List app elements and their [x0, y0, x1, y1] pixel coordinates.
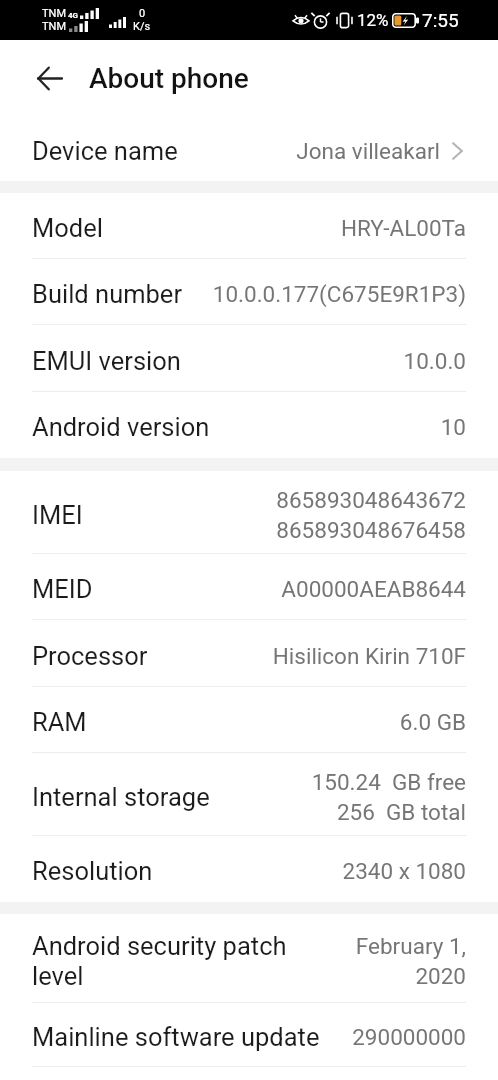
staticText: 4G	[68, 11, 79, 20]
button[interactable]: Device name	[0, 116, 498, 181]
staticText: 6.0 GB	[399, 709, 466, 735]
staticText: TNM	[42, 20, 67, 33]
button[interactable]: Processor	[0, 620, 498, 687]
button[interactable]: Resolution	[0, 836, 498, 902]
button[interactable]: EMUI version	[0, 325, 498, 392]
staticText: Device name	[32, 136, 178, 166]
staticText: 12%	[357, 10, 389, 30]
staticText: MEID	[32, 574, 93, 604]
staticText: 0	[139, 7, 146, 20]
button[interactable]: Android security patch level	[0, 914, 498, 1003]
staticText: 10.0.0	[403, 348, 466, 374]
staticText: TNM	[42, 7, 67, 20]
staticText: 10.0.0.177(C675E9R1P3)	[212, 281, 466, 307]
staticText: 10	[440, 414, 466, 440]
staticText: Resolution	[32, 856, 153, 886]
button[interactable]: IMEI	[0, 471, 498, 554]
staticText: EMUI version	[32, 346, 181, 376]
button[interactable]: Android version	[0, 392, 498, 458]
staticText: IMEI	[32, 500, 83, 530]
staticText: Model	[32, 213, 103, 243]
staticText: RAM	[32, 707, 87, 737]
button[interactable]: Back	[26, 55, 72, 101]
staticText: 150.24 GB free 256 GB total	[311, 769, 466, 825]
staticText: Hisilicon Kirin 710F	[272, 643, 466, 669]
staticText: 865893048643672 865893048676458	[276, 487, 466, 543]
button[interactable]: Mainline software update	[0, 1003, 498, 1067]
staticText: Android version	[32, 412, 210, 442]
button[interactable]: Model	[0, 193, 498, 259]
staticText: 7:55	[422, 9, 459, 31]
staticText: A00000AEAB8644	[281, 576, 466, 602]
staticText: Internal storage	[32, 782, 210, 812]
staticText: HRY-AL00Ta	[340, 215, 466, 241]
staticText: 290000000	[352, 1024, 466, 1050]
staticText: About phone	[89, 62, 249, 95]
button[interactable]: RAM	[0, 687, 498, 753]
staticText: Android security patch level	[32, 931, 287, 991]
button[interactable]: Build number	[0, 259, 498, 325]
staticText: Build number	[32, 279, 183, 309]
staticText: Jona villeakarl	[296, 138, 440, 164]
staticText: February 1, 2020	[355, 933, 466, 989]
staticText: Processor	[32, 641, 148, 671]
staticText: K/s	[133, 20, 151, 33]
staticText: 2340 x 1080	[342, 858, 466, 884]
button[interactable]: MEID	[0, 554, 498, 620]
staticText: Mainline software update	[32, 1022, 320, 1052]
button[interactable]: Internal storage	[0, 753, 498, 836]
